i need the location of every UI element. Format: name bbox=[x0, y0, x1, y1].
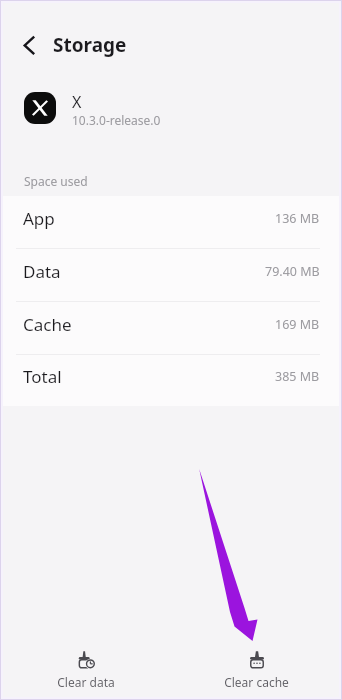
staticText: Cache bbox=[23, 313, 72, 336]
button[interactable]: App icon bbox=[24, 92, 56, 124]
staticText: 79.40 MB bbox=[265, 263, 320, 280]
button[interactable]: Total bbox=[0, 355, 342, 406]
button[interactable]: Cache bbox=[0, 302, 342, 355]
staticText: Clear cache bbox=[224, 674, 289, 690]
button[interactable]: Clear data bbox=[0, 640, 171, 700]
button[interactable]: Back bbox=[15, 30, 45, 60]
button[interactable]: Data bbox=[0, 249, 342, 302]
staticText: X bbox=[72, 91, 82, 113]
staticText: Space used bbox=[24, 173, 88, 189]
staticText: 10.3.0-release.0 bbox=[72, 112, 161, 128]
staticText: App bbox=[23, 207, 55, 230]
staticText: 385 MB bbox=[275, 368, 320, 385]
staticText: 136 MB bbox=[275, 210, 320, 227]
button[interactable]: Clear cache bbox=[171, 640, 342, 700]
staticText: Storage bbox=[53, 32, 127, 58]
staticText: Clear data bbox=[57, 674, 115, 690]
button[interactable]: App bbox=[0, 196, 342, 249]
staticText: Total bbox=[23, 365, 62, 388]
staticText: 169 MB bbox=[275, 316, 320, 333]
staticText: Data bbox=[23, 260, 61, 283]
